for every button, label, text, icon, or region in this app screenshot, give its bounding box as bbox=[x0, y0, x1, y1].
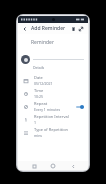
button[interactable]: Back bbox=[21, 25, 29, 33]
button[interactable]: Date bbox=[18, 74, 88, 87]
staticText: Repetition Interval bbox=[34, 114, 69, 119]
staticText: mins bbox=[34, 133, 43, 138]
staticText: Every 1 minutes bbox=[34, 107, 61, 112]
staticText: Date bbox=[34, 75, 43, 80]
staticText: 10:25 bbox=[34, 94, 43, 99]
button[interactable]: Reminder bbox=[31, 38, 83, 47]
button[interactable]: Time bbox=[18, 87, 88, 100]
button[interactable]: Delete bbox=[69, 25, 77, 33]
staticText: 05/12/2021 bbox=[34, 81, 53, 86]
button[interactable]: Recents bbox=[30, 162, 38, 170]
button[interactable]: Expand bbox=[77, 25, 85, 33]
button[interactable]: Back bbox=[69, 162, 77, 170]
button[interactable]: Home bbox=[49, 162, 57, 170]
staticText: Reminder bbox=[31, 39, 54, 46]
staticText: Add Reminder bbox=[31, 25, 66, 32]
button[interactable]: Repeat toggle bbox=[76, 104, 84, 109]
staticText: Details bbox=[33, 65, 45, 70]
button[interactable]: Repetition Interval bbox=[18, 113, 88, 126]
staticText: Type of Repetition bbox=[34, 127, 69, 132]
staticText: Repeat bbox=[34, 101, 48, 106]
button[interactable]: Category color bbox=[21, 55, 30, 64]
button[interactable]: Repeat bbox=[18, 100, 88, 113]
staticText: 1 bbox=[34, 120, 37, 125]
staticText: Time bbox=[34, 88, 44, 93]
button[interactable]: Type of Repetition bbox=[18, 126, 88, 139]
